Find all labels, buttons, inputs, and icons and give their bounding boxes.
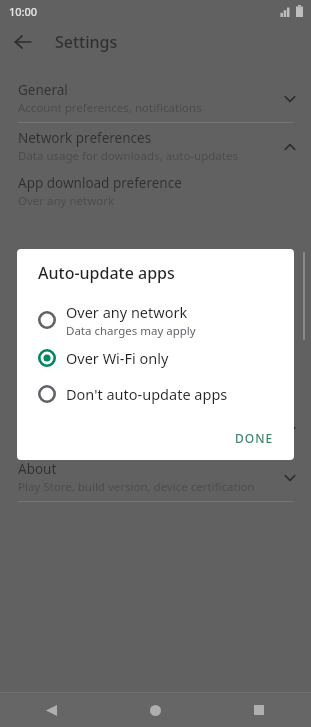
- button[interactable]: Family: [0, 406, 311, 453]
- button[interactable]: Network preferences: [0, 123, 311, 170]
- button[interactable]: Back: [0, 693, 103, 727]
- button[interactable]: DONE: [223, 422, 286, 454]
- staticText: Over any network: [18, 193, 115, 209]
- button[interactable]: Home: [103, 693, 207, 727]
- staticText: Play Store, build version, device certif…: [18, 479, 255, 495]
- staticText: Don't auto-update apps: [66, 384, 228, 404]
- staticText: Over any network: [66, 302, 188, 322]
- staticText: Data usage for downloads, auto-updates: [18, 148, 238, 164]
- button[interactable]: General: [0, 75, 311, 122]
- staticText: DONE: [235, 430, 274, 446]
- staticText: General: [18, 81, 68, 99]
- button[interactable]: Over Wi-Fi only: [17, 340, 294, 376]
- staticText: Over Wi-Fi only: [66, 348, 169, 368]
- staticText: Network preferences: [18, 129, 152, 147]
- staticText: 10:00: [9, 4, 38, 19]
- staticText: App download preference: [18, 174, 182, 192]
- staticText: About: [18, 460, 57, 478]
- staticText: Account preferences, notifications: [18, 100, 202, 116]
- staticText: Auto-update apps: [38, 262, 175, 284]
- button[interactable]: Back: [6, 25, 40, 59]
- staticText: Settings: [55, 31, 118, 53]
- button[interactable]: App download preference: [0, 170, 311, 212]
- button[interactable]: Over any network: [17, 300, 294, 340]
- button[interactable]: Don't auto-update apps: [17, 376, 294, 412]
- button[interactable]: About: [0, 454, 311, 501]
- staticText: Data charges may apply: [66, 323, 196, 339]
- button[interactable]: Recent apps: [207, 693, 311, 727]
